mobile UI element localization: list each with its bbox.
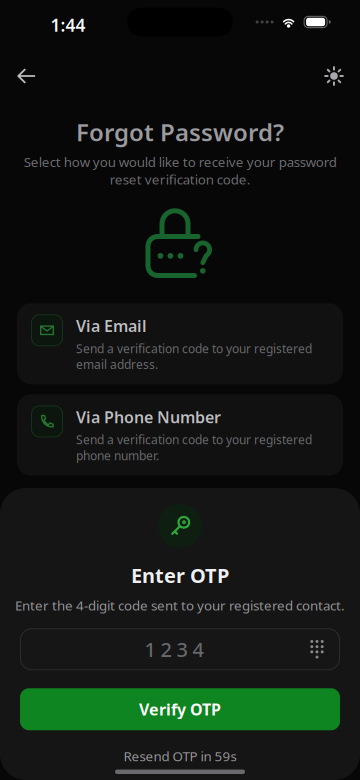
button[interactable]: Via Phone Number bbox=[17, 394, 343, 475]
button[interactable]: Resend OTP in 59s bbox=[115, 743, 244, 769]
staticText: Verify OTP bbox=[139, 699, 221, 720]
staticText: Select how you would like to receive you… bbox=[23, 153, 336, 188]
button[interactable]: Back bbox=[4, 54, 48, 98]
staticText: Enter OTP bbox=[131, 562, 229, 589]
staticText: Send a verification code to your registe… bbox=[76, 340, 312, 372]
button[interactable]: Verify OTP bbox=[20, 688, 340, 730]
staticText: 1:44 bbox=[50, 13, 85, 36]
staticText: Via Email bbox=[76, 315, 147, 336]
button[interactable]: Via Email bbox=[17, 303, 343, 384]
staticText: Resend OTP in 59s bbox=[123, 747, 236, 765]
staticText: Enter the 4-digit code sent to your regi… bbox=[15, 597, 345, 614]
staticText: Via Phone Number bbox=[76, 406, 221, 428]
staticText: Forgot Password? bbox=[76, 116, 284, 148]
staticText: Send a verification code to your registe… bbox=[76, 432, 312, 464]
button[interactable]: Toggle appearance bbox=[312, 54, 356, 98]
staticText: 1 2 3 4 bbox=[144, 636, 203, 663]
